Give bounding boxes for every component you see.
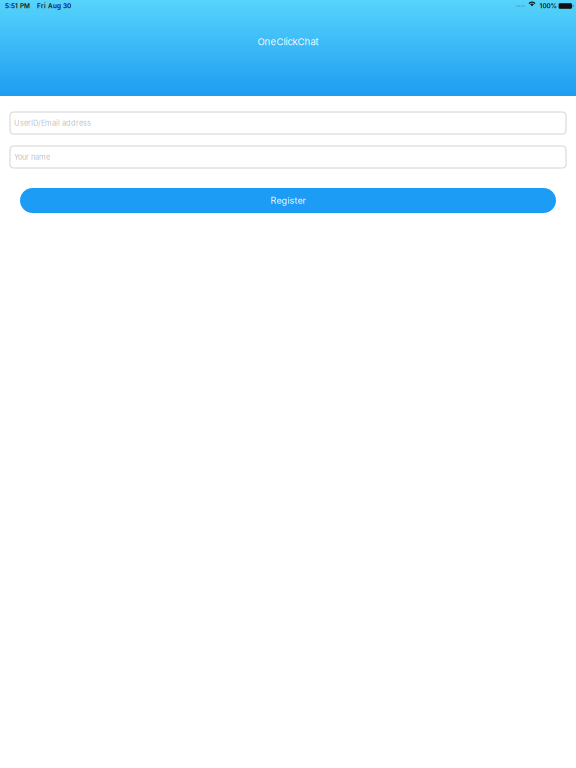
staticText: 5:51 PM [5,2,30,10]
staticText: Register [270,195,305,206]
staticText: Fri Aug 30 [37,2,71,10]
button[interactable]: Your name [10,146,566,168]
staticText: UserID/Email address [14,118,91,127]
staticText: Your name [14,152,50,161]
button[interactable]: UserID/Email address [10,112,566,134]
button[interactable]: Register [20,188,556,213]
staticText: OneClickChat [257,36,318,48]
staticText: 100% [539,2,556,10]
